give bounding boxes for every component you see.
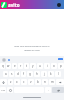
staticText: x — [16, 80, 18, 84]
staticText: i — [47, 64, 48, 68]
button[interactable]: j — [41, 71, 47, 77]
staticText: r — [20, 64, 22, 68]
staticText: v — [30, 80, 32, 84]
staticText: . — [48, 88, 49, 92]
button[interactable]: g — [27, 71, 33, 77]
staticText: b — [37, 80, 39, 84]
staticText: n — [44, 80, 46, 84]
button[interactable]: k — [48, 71, 54, 77]
staticText: w — [7, 64, 10, 68]
staticText: register on Avito — [24, 49, 40, 52]
staticText: a — [5, 72, 7, 76]
staticText: p — [60, 64, 62, 68]
button[interactable]: d — [15, 71, 20, 77]
button[interactable]: w — [6, 63, 11, 69]
staticText: Enter your phone number to log in or — [14, 45, 50, 48]
staticText: avito — [8, 2, 20, 8]
staticText: z — [10, 80, 12, 84]
staticText: o — [53, 64, 55, 68]
button[interactable]: m — [49, 79, 55, 85]
button[interactable]: t — [24, 63, 29, 69]
button[interactable]: l — [55, 71, 61, 77]
staticText: k — [50, 72, 52, 76]
staticText: f — [23, 72, 25, 76]
button[interactable]: . — [45, 87, 51, 93]
staticText: y — [32, 64, 34, 68]
button[interactable]: r — [18, 63, 23, 69]
button[interactable]: ?123 — [0, 87, 6, 93]
button[interactable]: Emoji — [7, 87, 13, 93]
staticText: h — [36, 72, 38, 76]
button[interactable]: h — [34, 71, 40, 77]
button[interactable]: Shift — [0, 79, 7, 85]
button[interactable]: Enter — [52, 87, 64, 93]
button[interactable]: v — [28, 79, 34, 85]
button[interactable]: Clipboard — [2, 58, 5, 61]
staticText: s — [11, 72, 13, 76]
button[interactable]: y — [30, 63, 36, 69]
button[interactable]: f — [21, 71, 26, 77]
staticText: u — [39, 64, 41, 68]
button[interactable]: a — [3, 71, 8, 77]
staticText: c — [23, 80, 25, 84]
button[interactable]: n — [42, 79, 48, 85]
button[interactable]: p — [58, 63, 64, 69]
staticText: m — [51, 80, 54, 84]
button[interactable]: e — [12, 63, 17, 69]
button[interactable]: c — [21, 79, 27, 85]
button[interactable]: Profile — [56, 2, 62, 8]
staticText: g — [29, 72, 31, 76]
button[interactable]: b — [35, 79, 41, 85]
button[interactable]: z — [8, 79, 13, 85]
button[interactable]: o — [51, 63, 57, 69]
button[interactable]: q — [0, 63, 5, 69]
staticText: ?123 — [1, 89, 6, 92]
staticText: l — [58, 72, 59, 76]
button[interactable]: i — [44, 63, 50, 69]
staticText: t — [26, 64, 28, 68]
staticText: j — [44, 72, 45, 76]
button[interactable]: Suggestion — [58, 58, 63, 60]
button[interactable]: u — [37, 63, 43, 69]
button[interactable]: App logo — [1, 2, 7, 8]
staticText: d — [17, 72, 19, 76]
button[interactable]: Backspace — [56, 79, 64, 85]
button[interactable]: x — [14, 79, 20, 85]
staticText: e — [14, 64, 16, 68]
staticText: q — [2, 64, 4, 68]
button[interactable]: Voice input — [7, 58, 10, 61]
button[interactable]: s — [9, 71, 14, 77]
